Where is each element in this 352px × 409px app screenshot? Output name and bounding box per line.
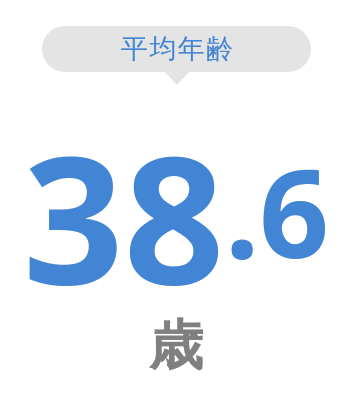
staticText: 歳: [149, 312, 203, 380]
staticText: .6: [225, 128, 330, 294]
staticText: 38: [23, 96, 225, 296]
staticText: 平均年齢: [120, 32, 234, 66]
button[interactable]: 平均年齢: [42, 26, 311, 85]
